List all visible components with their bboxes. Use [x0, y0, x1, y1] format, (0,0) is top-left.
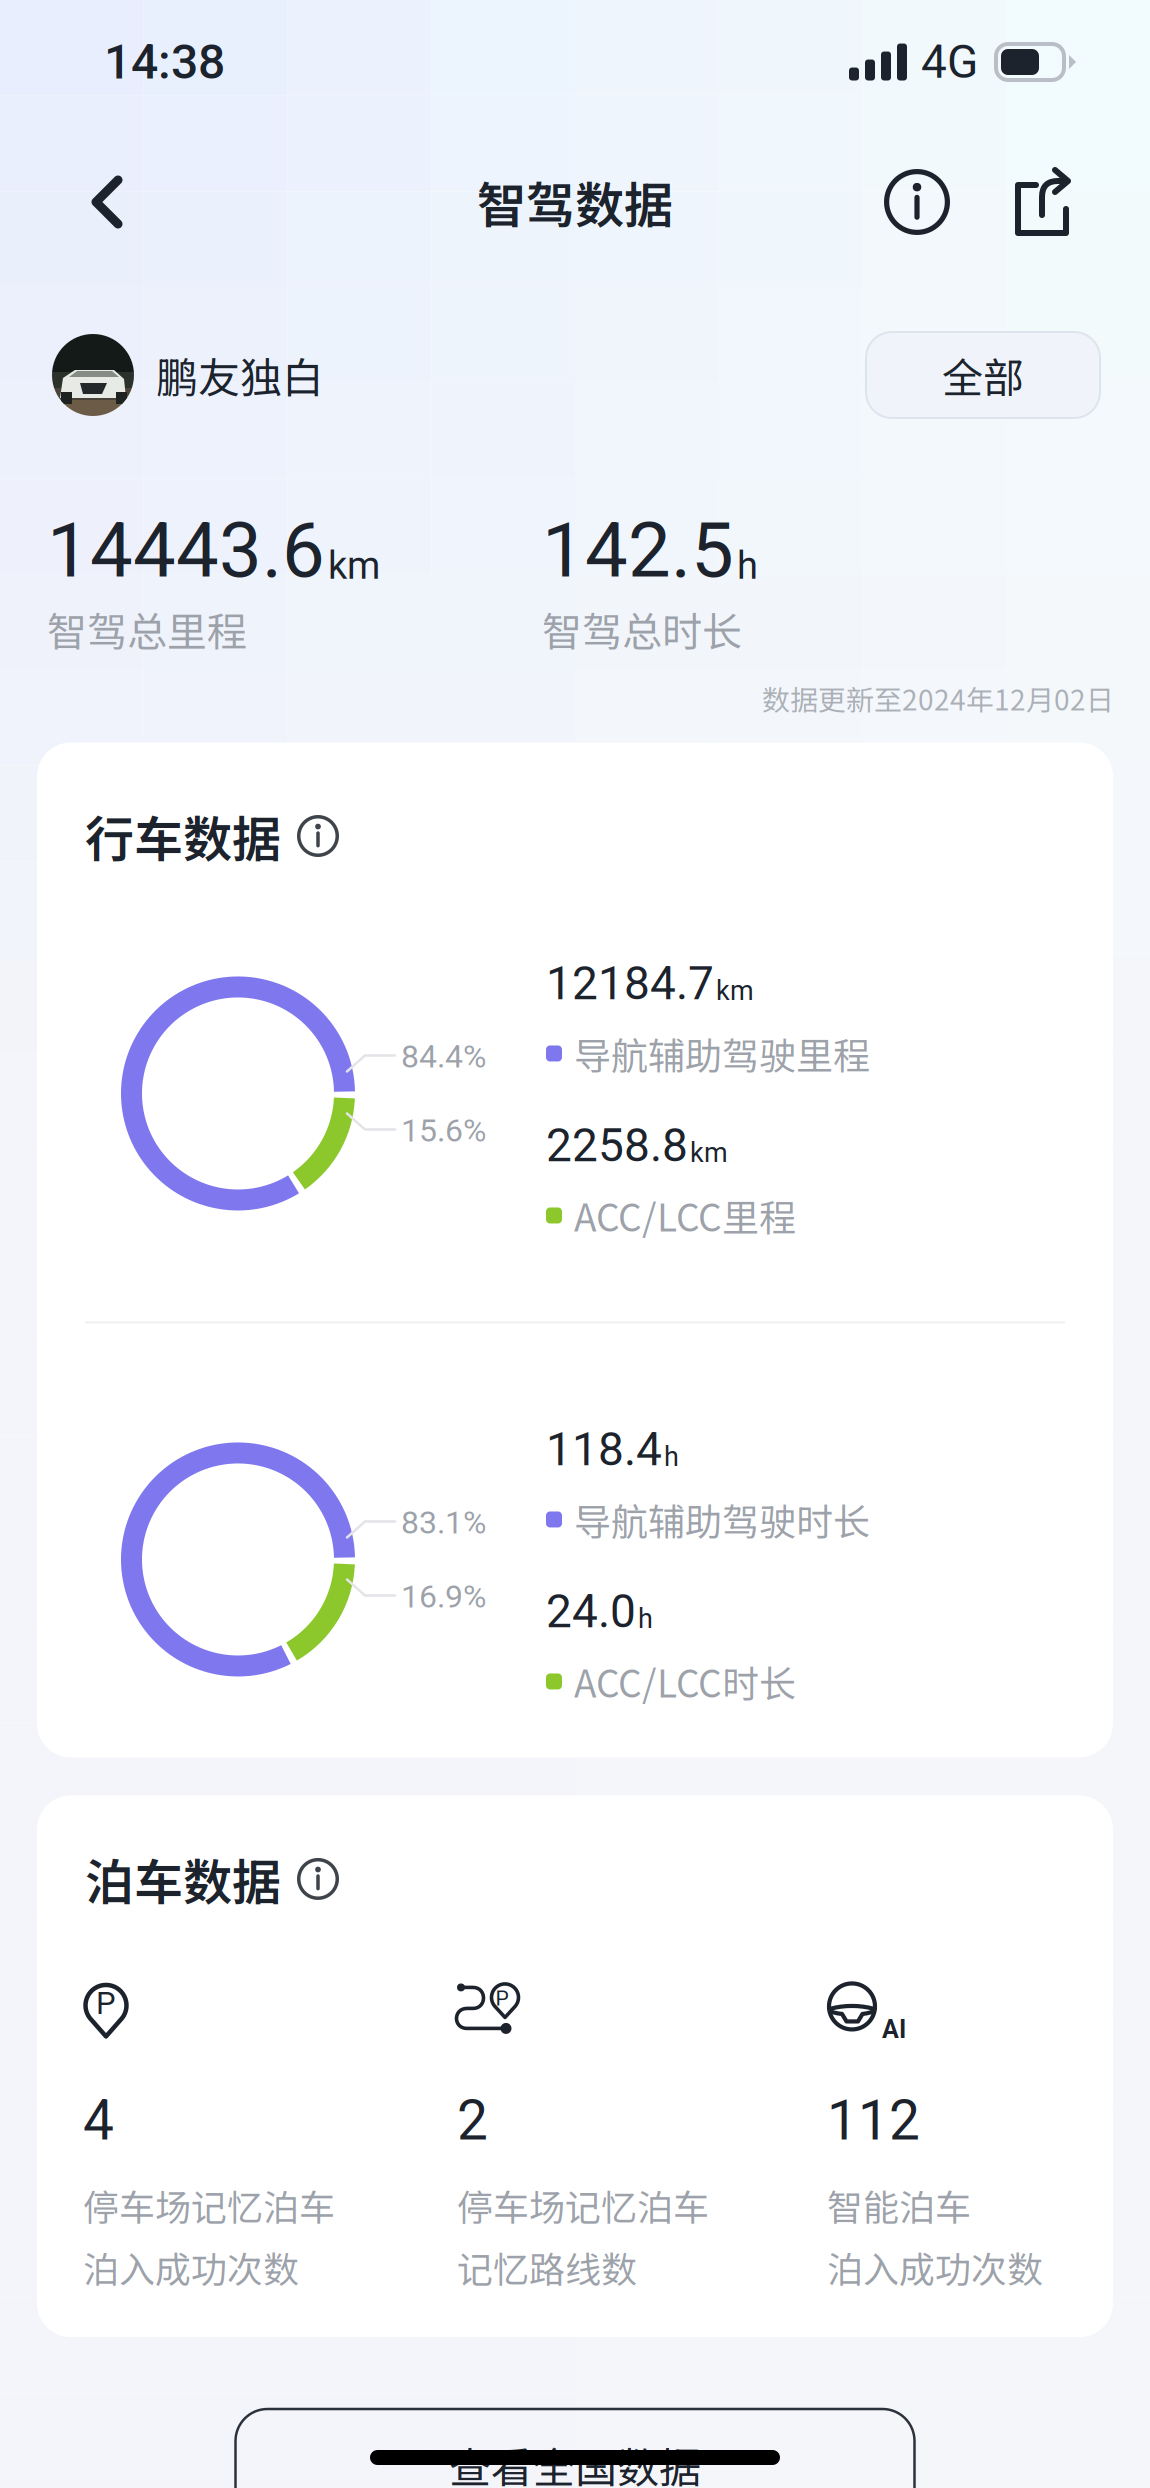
staticText: 84.4% [401, 1038, 486, 1075]
staticText: 智驾数据 [477, 166, 673, 237]
staticText: 4 [83, 2088, 114, 2153]
staticText: 导航辅助驾驶里程 [574, 1027, 870, 1080]
staticText: 12184.7 [546, 957, 714, 1010]
button[interactable]: 返回 [63, 154, 151, 250]
staticText: km [716, 975, 754, 1006]
staticText: h [638, 1603, 653, 1634]
staticText: 24.0 [546, 1585, 636, 1638]
staticText: 14443.6 [47, 506, 325, 595]
button[interactable]: 分享 [1011, 154, 1070, 250]
staticText: 停车场记忆泊车 [457, 2179, 709, 2231]
staticText: h [664, 1441, 679, 1472]
staticText: 记忆路线数 [457, 2241, 637, 2293]
staticText: 14:38 [104, 34, 225, 90]
staticText: 全部 [942, 345, 1024, 405]
staticText: 4G [921, 35, 978, 89]
staticText: 泊入成功次数 [827, 2241, 1043, 2293]
staticText: 118.4 [546, 1423, 662, 1476]
staticText: km [328, 543, 380, 588]
staticText: AI [882, 2015, 906, 2044]
staticText: 泊车数据 [85, 1843, 281, 1914]
staticText: P [96, 1985, 116, 2022]
staticText: 112 [827, 2088, 920, 2153]
staticText: 智驾总里程 [47, 600, 247, 658]
staticText: 数据更新至2024年12月02日 [762, 678, 1114, 718]
staticText: ACC/LCC里程 [574, 1189, 796, 1242]
staticText: 83.1% [401, 1504, 486, 1541]
staticText: 鹏友独白 [156, 345, 324, 405]
staticText: ACC/LCC时长 [574, 1655, 796, 1708]
button[interactable]: 说明 [884, 154, 950, 250]
staticText: 15.6% [401, 1112, 486, 1149]
staticText: 2258.8 [546, 1119, 688, 1172]
staticText: 2 [457, 2088, 488, 2153]
staticText: km [690, 1137, 728, 1168]
button[interactable]: 全部 [866, 332, 1100, 418]
staticText: 智能泊车 [827, 2179, 971, 2231]
staticText: 16.9% [401, 1578, 486, 1615]
staticText: 泊入成功次数 [83, 2241, 299, 2293]
staticText: P [495, 1986, 508, 2011]
button[interactable]: 查看全国数据 [235, 2409, 914, 2488]
staticText: 142.5 [542, 506, 734, 595]
staticText: 导航辅助驾驶时长 [574, 1493, 870, 1546]
staticText: h [737, 543, 758, 588]
staticText: 行车数据 [85, 800, 281, 871]
staticText: 智驾总时长 [542, 600, 742, 658]
staticText: 查看全国数据 [449, 2435, 701, 2488]
staticText: 停车场记忆泊车 [83, 2179, 335, 2231]
